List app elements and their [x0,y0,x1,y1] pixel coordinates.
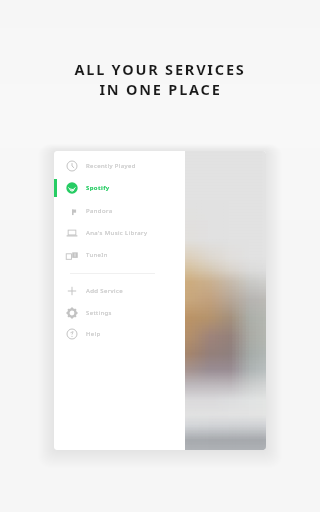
button[interactable]: Help [54,323,185,345]
staticText: IN ONE PLACE [99,79,222,99]
button[interactable]: TuneIn [54,244,185,266]
button[interactable]: Ana's Music Library [54,222,185,244]
button[interactable]: Settings [54,302,185,324]
button[interactable]: Add Service [54,280,185,302]
staticText: Add Service [86,287,123,295]
staticText: Ana's Music Library [86,229,148,237]
staticText: TuneIn [86,251,108,259]
staticText: Recently Played [86,162,136,170]
button[interactable]: Spotify [54,177,185,199]
staticText: Pandora [86,207,113,215]
staticText: Help [86,330,101,338]
button[interactable]: Pandora [54,200,185,222]
staticText: Spotify [86,184,110,192]
staticText: ALL YOUR SERVICES [74,59,246,79]
button[interactable]: Recently Played [54,155,185,177]
staticText: Settings [86,309,112,317]
